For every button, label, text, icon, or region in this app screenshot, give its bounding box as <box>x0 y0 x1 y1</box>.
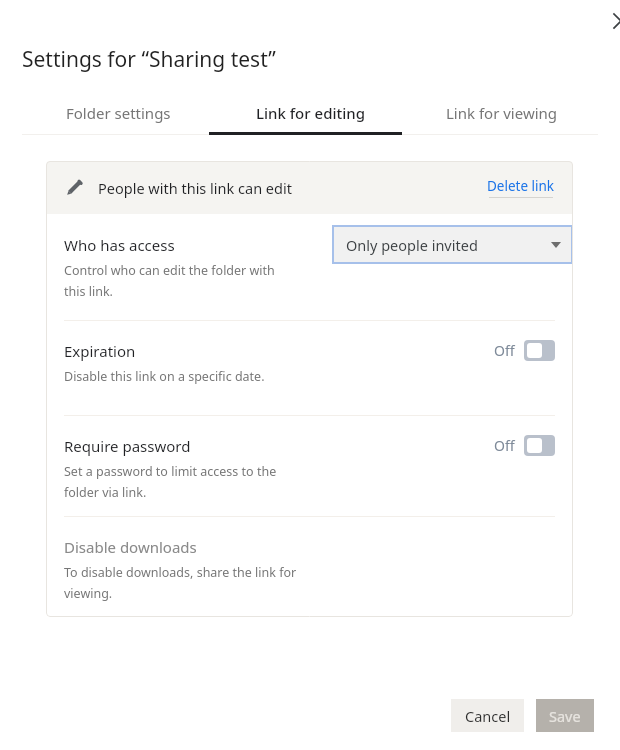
staticText: To disable downloads, share the link for <box>64 564 297 581</box>
button[interactable]: Only people invited <box>332 225 573 264</box>
staticText: Expiration <box>64 341 136 361</box>
staticText: Set a password to limit access to the <box>64 463 277 480</box>
staticText: Control who can edit the folder with <box>64 262 275 279</box>
button[interactable]: Cancel <box>451 699 524 732</box>
button[interactable]: Link for viewing <box>406 90 598 135</box>
staticText: Save <box>549 706 581 726</box>
button[interactable]: Toggle Expiration <box>524 340 555 361</box>
staticText: People with this link can edit <box>98 178 292 198</box>
button[interactable]: Link for editing <box>214 90 406 135</box>
staticText: this link. <box>64 283 113 300</box>
staticText: Link for editing <box>256 103 365 123</box>
staticText: viewing. <box>64 585 113 602</box>
staticText: Who has access <box>64 235 175 255</box>
staticText: Require password <box>64 436 191 456</box>
button[interactable]: Require password <box>46 416 573 516</box>
staticText: Cancel <box>465 706 511 726</box>
staticText: Link for viewing <box>446 103 558 123</box>
staticText: folder via link. <box>64 484 147 501</box>
button[interactable]: Folder settings <box>22 90 214 135</box>
staticText: Settings for “Sharing test” <box>22 45 276 74</box>
button[interactable]: Close <box>605 5 620 37</box>
button[interactable]: Expiration <box>46 321 573 415</box>
staticText: Disable this link on a specific date. <box>64 368 265 385</box>
staticText: Off <box>494 341 515 360</box>
staticText: Folder settings <box>66 103 171 123</box>
staticText: Only people invited <box>346 235 478 255</box>
staticText: Disable downloads <box>64 537 197 557</box>
button[interactable]: Toggle Require password <box>524 435 555 456</box>
staticText: Delete link <box>487 177 555 195</box>
button[interactable]: Save <box>536 699 594 732</box>
button[interactable]: Who has access <box>46 214 573 320</box>
staticText: Off <box>494 436 515 455</box>
button[interactable]: Delete link <box>487 177 555 198</box>
